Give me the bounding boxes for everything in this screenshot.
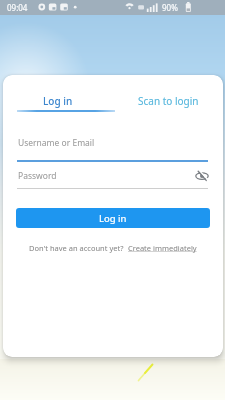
staticText: Username or Email (18, 137, 95, 149)
staticText: Scan to login (138, 94, 199, 108)
staticText: Create immediately (128, 243, 197, 253)
staticText: Log in (43, 94, 73, 108)
staticText: Log in (99, 212, 127, 225)
staticText: Don't have an account yet? (29, 243, 128, 253)
staticText: Password (18, 170, 57, 182)
staticText: 09:04 (7, 2, 28, 13)
staticText: 90% (162, 2, 178, 13)
